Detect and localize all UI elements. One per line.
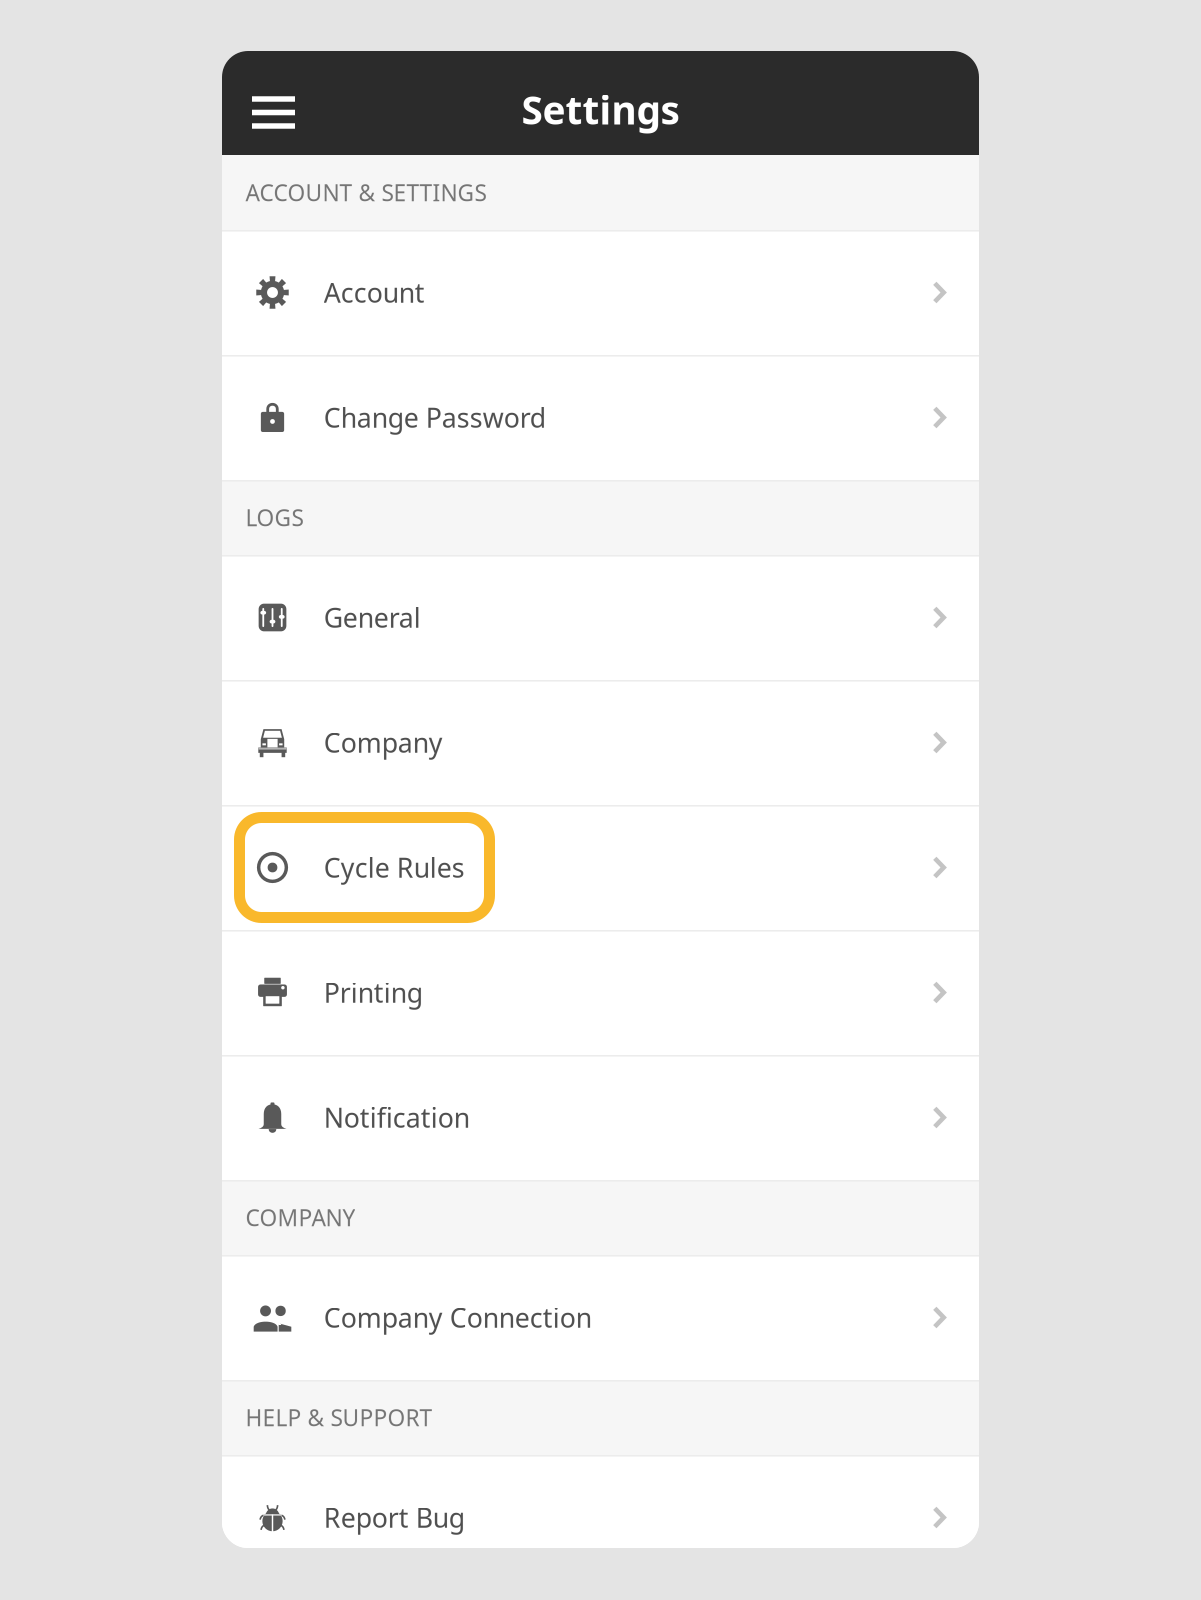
staticText: COMPANY bbox=[245, 1202, 355, 1232]
staticText: Notification bbox=[324, 1100, 470, 1135]
button[interactable]: Notification bbox=[222, 1055, 979, 1180]
button[interactable]: Menu bbox=[242, 75, 304, 143]
staticText: Printing bbox=[324, 975, 423, 1010]
staticText: Report Bug bbox=[324, 1500, 465, 1535]
staticText: HELP & SUPPORT bbox=[245, 1402, 432, 1432]
button[interactable]: Change Password bbox=[222, 355, 979, 480]
staticText: ACCOUNT & SETTINGS bbox=[245, 177, 486, 207]
button[interactable]: General bbox=[222, 555, 979, 680]
staticText: Settings bbox=[521, 84, 679, 135]
staticText: Change Password bbox=[324, 400, 546, 435]
staticText: Cycle Rules bbox=[324, 850, 465, 885]
staticText: Company Connection bbox=[324, 1300, 592, 1335]
button[interactable]: Company bbox=[222, 680, 979, 805]
staticText: LOGS bbox=[245, 502, 303, 532]
button[interactable]: Cycle Rules bbox=[222, 805, 979, 930]
button[interactable]: Report Bug bbox=[222, 1455, 979, 1580]
staticText: Company bbox=[324, 725, 443, 760]
button[interactable]: Company Connection bbox=[222, 1255, 979, 1380]
button[interactable]: Account bbox=[222, 230, 979, 355]
staticText: Account bbox=[324, 275, 425, 310]
staticText: General bbox=[324, 600, 421, 635]
button[interactable]: Printing bbox=[222, 930, 979, 1055]
